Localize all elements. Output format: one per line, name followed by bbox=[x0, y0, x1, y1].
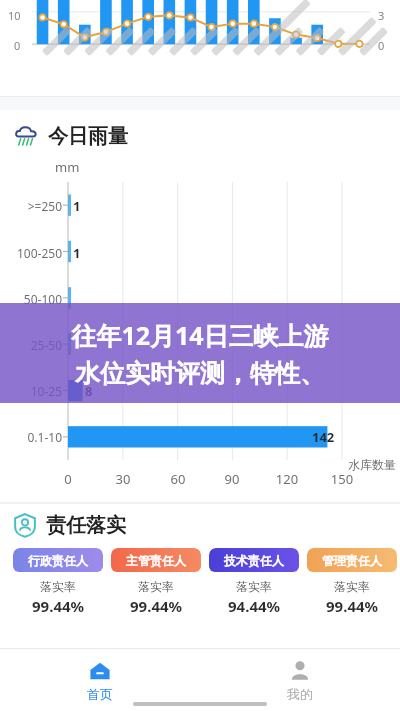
staticText: 3 bbox=[378, 8, 385, 23]
staticText: 责任落实 bbox=[46, 513, 126, 538]
staticText: 0 bbox=[378, 38, 385, 53]
staticText: 行政责任人 bbox=[28, 553, 88, 568]
staticText: 水库数量 bbox=[348, 457, 396, 472]
staticText: 管理责任人 bbox=[322, 553, 382, 568]
staticText: 142 bbox=[312, 428, 335, 446]
staticText: 50-100 bbox=[0, 291, 62, 307]
button[interactable]: 行政责任人 bbox=[13, 548, 103, 623]
staticText: 30 bbox=[109, 470, 137, 488]
staticText: 落实率 bbox=[334, 579, 370, 594]
staticText: 90 bbox=[218, 470, 246, 488]
staticText: mm bbox=[55, 158, 80, 176]
staticText: 技术责任人 bbox=[224, 553, 284, 568]
staticText: 落实率 bbox=[138, 579, 174, 594]
staticText: 8 bbox=[85, 382, 93, 400]
staticText: 1 bbox=[73, 244, 81, 262]
button[interactable]: 技术责任人 bbox=[209, 548, 299, 623]
staticText: 主管责任人 bbox=[126, 553, 186, 568]
staticText: 我的 bbox=[287, 686, 313, 702]
staticText: 99.44% bbox=[326, 596, 379, 616]
button[interactable]: 管理责任人 bbox=[307, 548, 397, 623]
staticText: 120 bbox=[273, 470, 301, 488]
staticText: 60 bbox=[164, 470, 192, 488]
staticText: 100-250 bbox=[0, 245, 62, 261]
staticText: 1 bbox=[73, 197, 81, 215]
button[interactable]: 主管责任人 bbox=[111, 548, 201, 623]
staticText: 99.44% bbox=[32, 596, 85, 616]
staticText: 0 bbox=[54, 470, 82, 488]
staticText: 150 bbox=[328, 470, 356, 488]
staticText: 水位实时评测，特性、 bbox=[75, 358, 325, 389]
staticText: 往年12月14日三峡上游 bbox=[71, 318, 329, 352]
staticText: >=250 bbox=[0, 198, 62, 214]
staticText: 落实率 bbox=[236, 579, 272, 594]
button[interactable]: 首页 bbox=[69, 655, 131, 706]
staticText: 99.44% bbox=[130, 596, 183, 616]
staticText: 首页 bbox=[87, 686, 113, 702]
button[interactable]: 我的 bbox=[269, 655, 331, 706]
staticText: 0 bbox=[14, 38, 21, 53]
button[interactable]: 责任落实 bbox=[0, 512, 400, 538]
staticText: 10 bbox=[8, 8, 21, 23]
staticText: 25-50 bbox=[0, 337, 62, 353]
staticText: 今日雨量 bbox=[48, 124, 128, 149]
staticText: 10-25 bbox=[0, 383, 62, 399]
staticText: 落实率 bbox=[40, 579, 76, 594]
staticText: 94.44% bbox=[228, 596, 281, 616]
staticText: 0.1-10 bbox=[0, 429, 62, 445]
button[interactable]: 今日雨量 bbox=[0, 122, 400, 150]
